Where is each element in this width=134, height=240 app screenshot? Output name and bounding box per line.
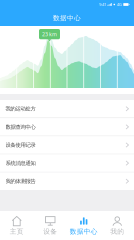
button[interactable]: 我的体测报告: [0, 172, 134, 190]
button[interactable]: 我的: [100, 211, 134, 240]
staticText: 23 km: [42, 31, 57, 38]
staticText: 数据中心: [70, 228, 98, 236]
staticText: 系统消息通知: [5, 160, 35, 166]
button[interactable]: 主页: [0, 211, 33, 240]
staticText: 9:41: [99, 2, 106, 7]
staticText: 数据中心: [53, 14, 81, 22]
button[interactable]: 数据中心: [67, 211, 100, 240]
staticText: 4G: [117, 2, 122, 7]
staticText: 设备使用记录: [5, 142, 35, 148]
button[interactable]: 设备: [33, 211, 67, 240]
button[interactable]: 数据查询中心: [0, 118, 134, 136]
button[interactable]: 我的运动处方: [0, 100, 134, 118]
staticText: 设备: [43, 228, 57, 236]
button[interactable]: 设备使用记录: [0, 136, 134, 154]
staticText: 我的运动处方: [5, 105, 35, 112]
staticText: 数据查询中心: [5, 124, 35, 130]
staticText: 主页: [10, 228, 24, 236]
staticText: 我的: [110, 228, 124, 236]
staticText: 我的体测报告: [5, 178, 35, 184]
button[interactable]: 系统消息通知: [0, 154, 134, 172]
